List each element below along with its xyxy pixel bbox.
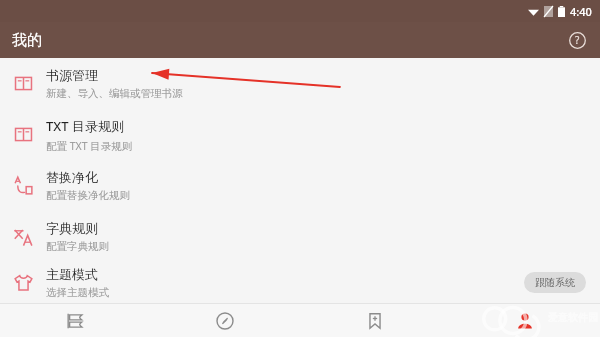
button[interactable]: 替换净化	[0, 160, 600, 211]
staticText: 字典规则	[46, 220, 98, 236]
button[interactable]: Explore	[150, 304, 300, 337]
staticText: 新建、导入、编辑或管理书源	[46, 87, 183, 100]
button[interactable]: 字典规则	[0, 211, 600, 262]
staticText: 我的	[12, 31, 42, 50]
button[interactable]: Bookshelf	[0, 304, 150, 337]
staticText: ?	[575, 33, 580, 47]
button[interactable]: Help	[564, 27, 590, 53]
staticText: TXT 目录规则	[46, 117, 124, 135]
button[interactable]: My	[450, 304, 600, 337]
staticText: 书源管理	[46, 67, 98, 83]
button[interactable]: 主题模式	[0, 262, 600, 303]
button[interactable]: 跟随系统	[535, 276, 575, 289]
staticText: 配置 TXT 目录规则	[46, 139, 133, 153]
button[interactable]: Subscribe	[300, 304, 450, 337]
staticText: 配置替换净化规则	[46, 189, 130, 202]
button[interactable]: 书源管理	[0, 58, 600, 109]
staticText: 选择主题模式	[46, 286, 109, 299]
staticText: 跟随系统	[535, 276, 575, 289]
staticText: 配置字典规则	[46, 240, 109, 253]
staticText: 主题模式	[46, 266, 98, 282]
button[interactable]: TXT 目录规则	[0, 109, 600, 160]
staticText: 替换净化	[46, 169, 98, 185]
staticText: 4:40	[570, 4, 592, 19]
